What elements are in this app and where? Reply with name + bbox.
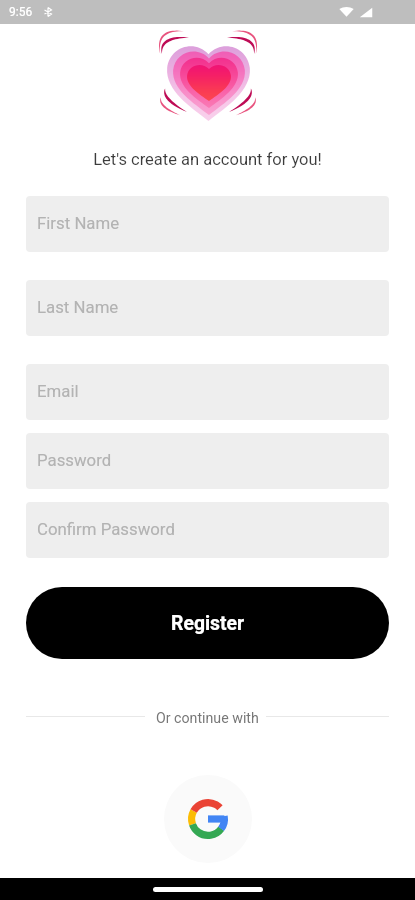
staticText: First Name (37, 213, 120, 233)
button[interactable]: Password (26, 433, 389, 489)
staticText: Password (37, 450, 112, 470)
staticText: Let's create an account for you! (0, 150, 415, 169)
button[interactable]: First Name (26, 196, 389, 252)
button[interactable]: Confirm Password (26, 502, 389, 558)
button[interactable]: Last Name (26, 280, 389, 336)
staticText: Or continue with (156, 710, 259, 727)
staticText: Email (37, 381, 79, 401)
button[interactable]: Register (26, 587, 389, 659)
button[interactable]: Email (26, 364, 389, 420)
button[interactable]: Continue with Google (164, 775, 252, 863)
staticText: Confirm Password (37, 519, 175, 539)
staticText: 9:56 (9, 5, 33, 19)
staticText: Last Name (37, 297, 119, 317)
staticText: Register (171, 612, 245, 635)
